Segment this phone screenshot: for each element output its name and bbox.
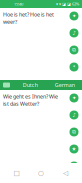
staticText: □ — [13, 169, 19, 177]
button[interactable]: Copy — [68, 126, 80, 138]
staticText: ✦ — [72, 95, 76, 101]
staticText: Hoe is het? Hoe is het weer? — [3, 11, 54, 25]
button[interactable]: Home — [33, 166, 49, 180]
staticText: Dutch — [23, 81, 38, 89]
staticText: ＊ — [71, 64, 76, 70]
button[interactable]: Translate — [68, 92, 80, 104]
button[interactable]: German — [47, 80, 82, 90]
button[interactable]: Back — [57, 166, 73, 180]
staticText: ⧉ — [72, 47, 76, 53]
button[interactable]: Translate — [68, 10, 80, 22]
staticText: Wie geht es Ihnen? Wie ist das Wetter? — [3, 93, 58, 107]
staticText: ★ — [71, 146, 76, 152]
button[interactable]: Share — [68, 160, 80, 172]
button[interactable]: Listen — [68, 27, 80, 39]
staticText: ✦ — [72, 13, 76, 19]
button[interactable]: Dutch — [13, 80, 47, 90]
button[interactable]: Favorite — [68, 143, 80, 155]
staticText: 19:40 — [14, 1, 23, 7]
staticText: German — [55, 81, 75, 89]
staticText: ♪ — [72, 30, 75, 36]
staticText: ○ — [38, 169, 44, 177]
button[interactable]: Copy — [68, 44, 80, 56]
staticText: ♪ — [72, 112, 75, 118]
staticText: ◁ — [63, 169, 68, 177]
button[interactable]: Share — [68, 61, 80, 73]
button[interactable]: Menu — [0, 80, 13, 90]
button[interactable]: Recent apps — [8, 166, 24, 180]
staticText: ▾ ▾ ◪ ◪ 63% — [56, 1, 79, 7]
staticText: ⧉ — [72, 129, 76, 135]
button[interactable]: Listen — [68, 109, 80, 121]
